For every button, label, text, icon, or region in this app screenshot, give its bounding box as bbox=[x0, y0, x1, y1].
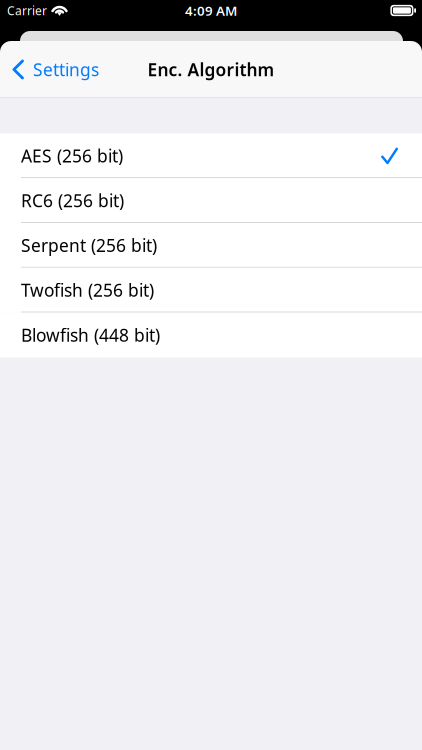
button[interactable]: AES (256 bit) bbox=[0, 133, 422, 178]
staticText: Serpent (256 bit) bbox=[21, 234, 157, 257]
button[interactable]: Back to Settings bbox=[0, 47, 109, 91]
button[interactable]: Blowfish (448 bit) bbox=[0, 312, 422, 357]
staticText: Settings bbox=[33, 58, 99, 81]
button[interactable]: RC6 (256 bit) bbox=[0, 178, 422, 223]
button[interactable]: Twofish (256 bit) bbox=[0, 268, 422, 312]
staticText: Blowfish (448 bit) bbox=[21, 323, 160, 346]
staticText: AES (256 bit) bbox=[21, 144, 123, 167]
staticText: RC6 (256 bit) bbox=[21, 189, 124, 212]
button[interactable]: Serpent (256 bit) bbox=[0, 223, 422, 268]
staticText: 4:09 AM bbox=[185, 2, 237, 19]
staticText: Carrier bbox=[7, 2, 47, 18]
staticText: Twofish (256 bit) bbox=[21, 279, 154, 302]
staticText: Enc. Algorithm bbox=[147, 58, 274, 81]
